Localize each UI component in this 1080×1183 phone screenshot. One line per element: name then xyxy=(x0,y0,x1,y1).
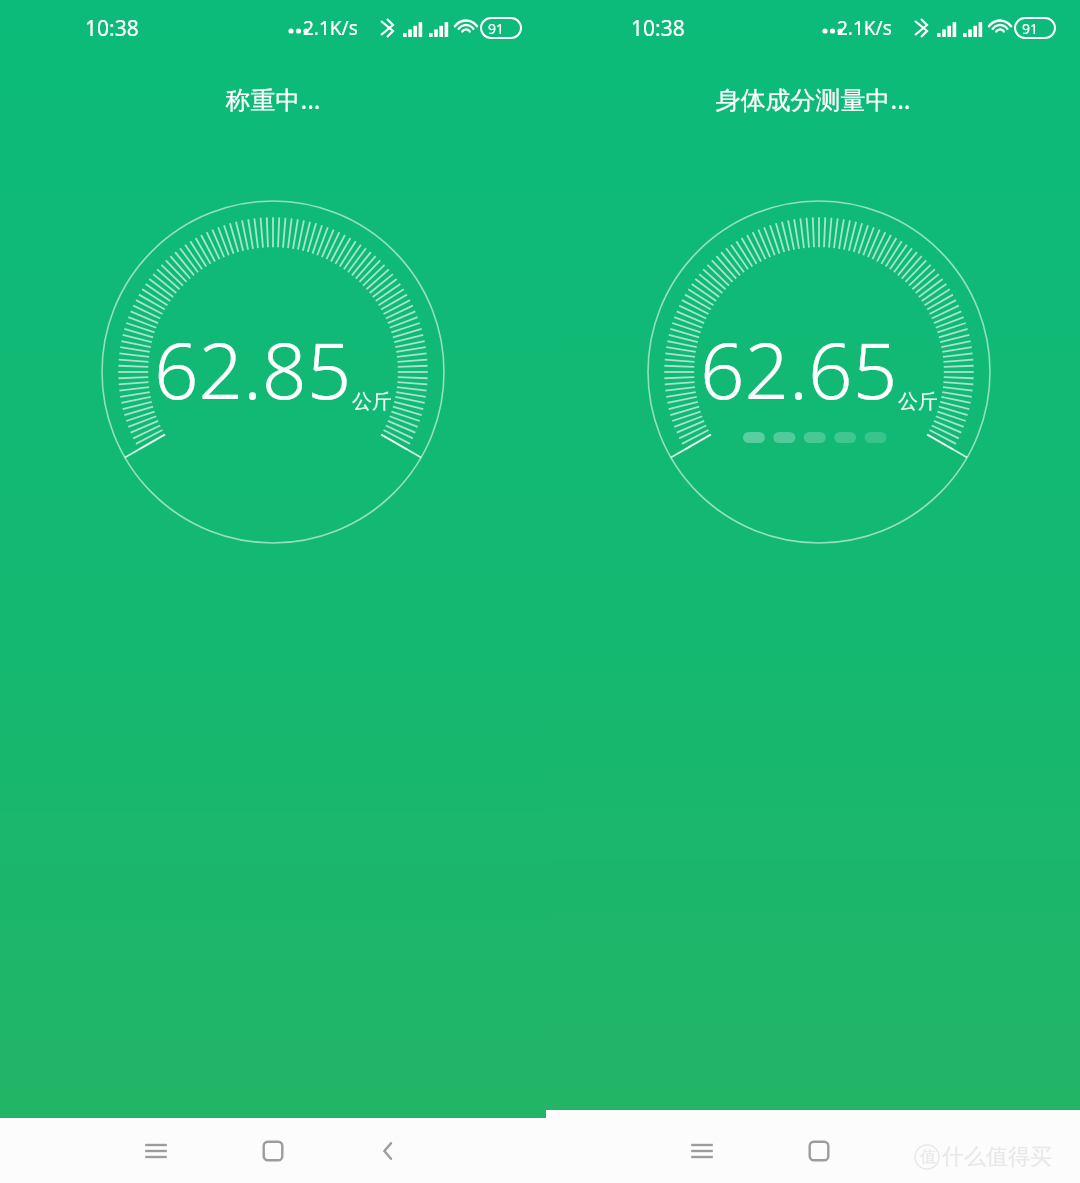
staticText: 身体成分测量中... xyxy=(546,82,1080,116)
staticText: 91 xyxy=(1022,19,1039,38)
staticText: 10:38 xyxy=(631,14,685,43)
staticText: 10:38 xyxy=(85,14,139,43)
button[interactable]: Home xyxy=(783,1118,855,1183)
staticText: 值 xyxy=(920,1147,936,1167)
button[interactable]: Back xyxy=(352,1118,424,1183)
staticText: 称重中... xyxy=(0,82,546,116)
button[interactable]: Recents xyxy=(666,1118,738,1183)
staticText: 什么值得买 xyxy=(942,1143,1052,1171)
staticText: 2.1K/s xyxy=(837,15,892,41)
staticText: 91 xyxy=(488,19,505,38)
button[interactable]: Home xyxy=(237,1118,309,1183)
staticText: 公斤 xyxy=(898,389,938,414)
staticText: 公斤 xyxy=(352,389,392,414)
staticText: 62.65 xyxy=(700,316,898,422)
button[interactable]: Recents xyxy=(120,1118,192,1183)
staticText: 62.85 xyxy=(154,316,352,422)
staticText: 2.1K/s xyxy=(303,15,358,41)
